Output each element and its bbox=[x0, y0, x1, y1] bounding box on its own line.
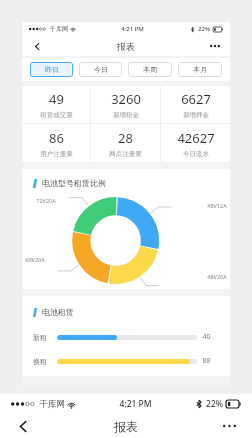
staticText: 网点注册量 bbox=[109, 150, 142, 158]
button[interactable]: 新租 bbox=[33, 332, 219, 342]
staticText: 42627 bbox=[177, 129, 215, 147]
button[interactable]: 今日 bbox=[79, 62, 122, 77]
staticText: 22% bbox=[206, 398, 223, 410]
staticText: 报表 bbox=[114, 419, 138, 434]
button[interactable]: Back bbox=[30, 39, 44, 53]
staticText: 报表 bbox=[117, 41, 135, 52]
staticText: 4:21 PM bbox=[121, 25, 144, 33]
button[interactable]: 6627 bbox=[161, 86, 230, 123]
staticText: 今日流水 bbox=[183, 150, 209, 158]
staticText: 昨日 bbox=[45, 65, 59, 74]
staticText: 用户注册量 bbox=[40, 150, 73, 158]
button[interactable]: 49 bbox=[22, 86, 90, 123]
staticText: 22% bbox=[198, 25, 210, 33]
staticText: 40 bbox=[202, 332, 211, 342]
button[interactable]: 本月 bbox=[178, 62, 222, 77]
staticText: 千库网 bbox=[50, 25, 68, 33]
staticText: 千库网 bbox=[39, 399, 65, 410]
staticText: 新增押金 bbox=[183, 111, 209, 119]
staticText: 电池型号租赁比例 bbox=[42, 178, 106, 188]
button[interactable]: 昨日 bbox=[30, 62, 73, 77]
staticText: 88 bbox=[202, 356, 211, 366]
button[interactable]: Back bbox=[13, 416, 33, 436]
button[interactable]: 换租 bbox=[33, 356, 219, 366]
button[interactable]: More options bbox=[219, 416, 239, 436]
staticText: 60V20A bbox=[25, 256, 45, 263]
staticText: 3260 bbox=[111, 90, 141, 108]
button[interactable]: 本周 bbox=[128, 62, 172, 77]
staticText: 本周 bbox=[143, 65, 157, 74]
button[interactable]: 3260 bbox=[91, 86, 160, 123]
button[interactable]: 86 bbox=[22, 124, 90, 162]
staticText: 新增租金 bbox=[113, 111, 139, 119]
staticText: 6627 bbox=[181, 90, 211, 108]
staticText: 换租 bbox=[33, 357, 47, 366]
staticText: 48V20A bbox=[207, 273, 227, 280]
staticText: 租赁成交量 bbox=[40, 111, 73, 119]
staticText: 4:21 PM bbox=[119, 398, 152, 410]
staticText: 72V20A bbox=[36, 197, 56, 204]
staticText: 86 bbox=[49, 129, 64, 147]
staticText: 28 bbox=[118, 129, 133, 147]
staticText: 48V12A bbox=[207, 202, 227, 209]
staticText: 新租 bbox=[33, 333, 47, 342]
button[interactable]: 28 bbox=[91, 124, 160, 162]
staticText: 49 bbox=[49, 90, 64, 108]
button[interactable]: More options bbox=[208, 39, 222, 53]
staticText: 本月 bbox=[193, 65, 207, 74]
staticText: 今日 bbox=[94, 65, 108, 74]
staticText: 电池租赁 bbox=[42, 307, 74, 317]
button[interactable]: 42627 bbox=[161, 124, 230, 162]
